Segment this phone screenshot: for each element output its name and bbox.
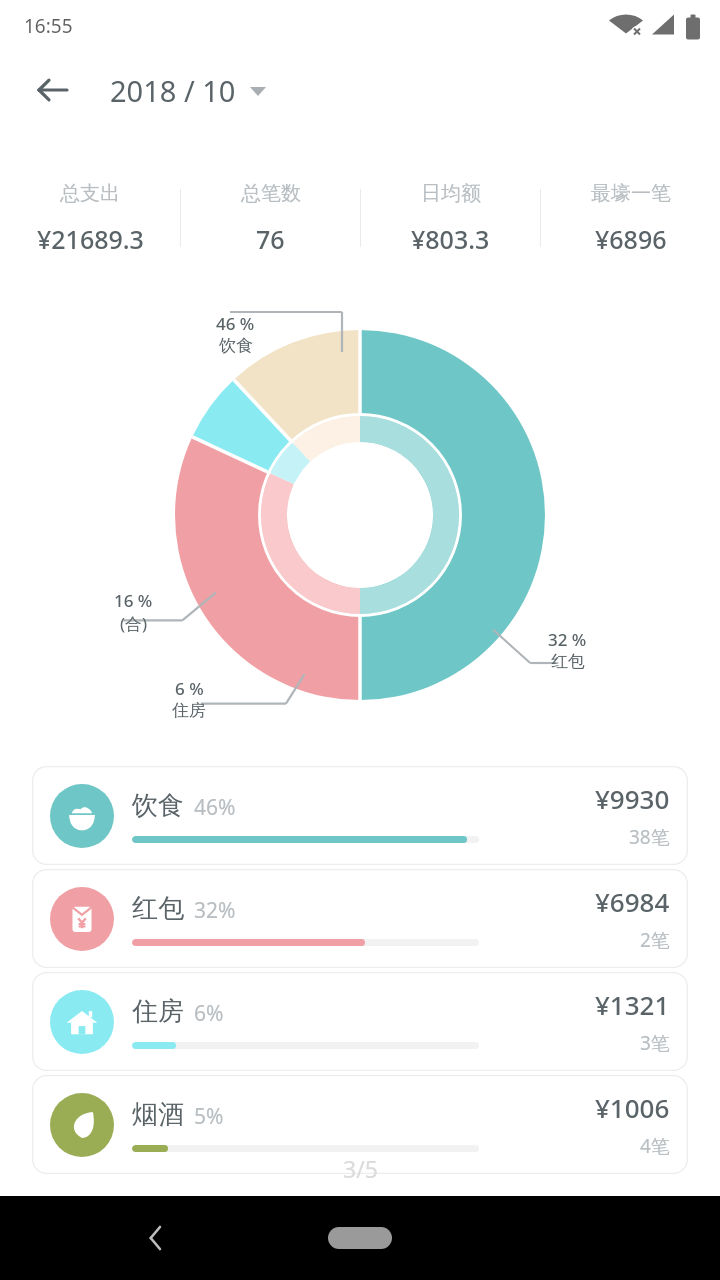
staticText: 住房 [132,995,184,1028]
staticText: 3/5 [343,1153,378,1184]
staticText: ¥21689.3 [37,222,144,256]
staticText: 32 % [548,628,587,651]
staticText: 6% [194,999,224,1028]
staticText: 红包 [132,892,184,925]
staticText: 住房 [172,700,206,721]
staticText: 5% [194,1102,224,1131]
staticText: ¥6896 [595,222,667,256]
button[interactable]: 住房 [32,972,688,1071]
staticText: 饮食 [132,789,184,822]
button[interactable]: Back [24,62,80,118]
staticText: 日均额 [421,181,481,206]
staticText: 3笔 [640,1030,670,1056]
staticText: 46 % [216,312,255,335]
staticText: ¥9930 [595,781,670,816]
staticText: 烟酒 [132,1098,184,1131]
button[interactable]: 饮食 [32,766,688,865]
staticText: 总支出 [60,181,120,206]
staticText: 38笔 [629,824,670,850]
staticText: ¥1321 [595,987,670,1022]
button[interactable]: 总支出 [0,170,180,266]
staticText: 6 % [175,677,204,700]
staticText: 16:55 [24,13,73,39]
staticText: ¥6984 [595,884,670,919]
staticText: 红包 [551,651,585,672]
staticText: 2018 / 10 [110,71,236,110]
staticText: 饮食 [219,335,253,356]
staticText: 32% [194,896,236,925]
staticText: 46% [194,793,236,822]
staticText: 16 % [114,589,153,612]
staticText: 最壕一笔 [591,181,671,206]
staticText: ¥1006 [595,1090,670,1125]
staticText: (合) [120,612,148,635]
button[interactable]: Home [328,1227,392,1249]
button[interactable]: 总笔数 [181,170,360,266]
staticText: 4笔 [640,1133,670,1159]
staticText: 76 [256,222,285,256]
staticText: 总笔数 [241,181,301,206]
button[interactable]: 日均额 [361,170,540,266]
staticText: ¥803.3 [411,222,490,256]
button[interactable]: 2018 / 10 [106,65,270,116]
button[interactable]: Back [132,1214,180,1262]
button[interactable]: 红包 [32,869,688,968]
button[interactable]: 烟酒 [32,1075,688,1174]
staticText: 2笔 [640,927,670,953]
button[interactable]: 最壕一笔 [541,170,720,266]
